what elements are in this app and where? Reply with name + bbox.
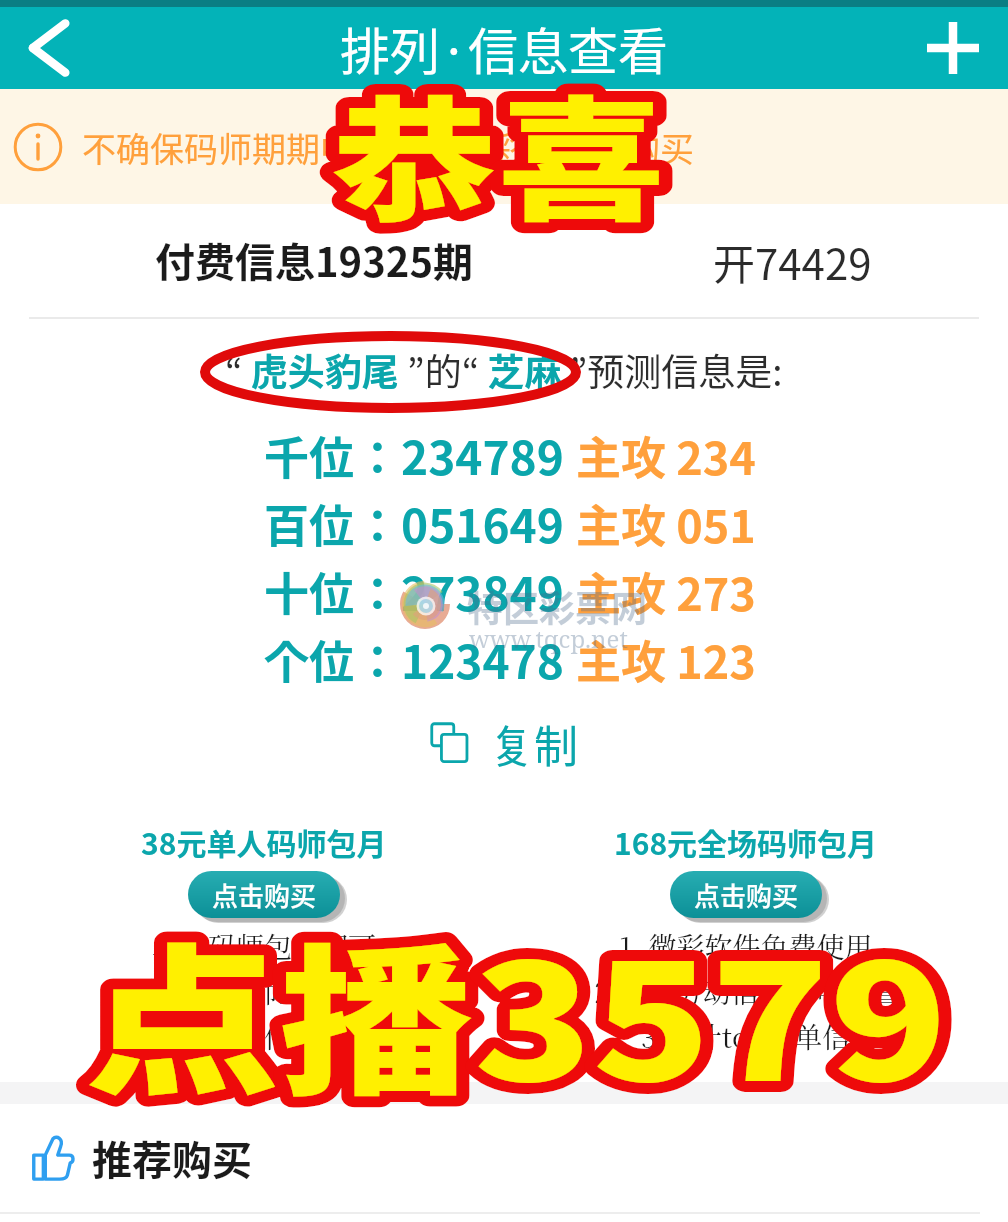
staticText: 38元单人码师包月: [141, 820, 387, 863]
button[interactable]: 推荐购买: [0, 1104, 1008, 1212]
staticText: 推荐购买: [92, 1129, 252, 1187]
staticText: 排列·信息查看: [340, 12, 669, 84]
staticText: 复制: [490, 712, 578, 776]
staticText: 关注信息: [208, 1016, 321, 1056]
staticText: ：: [355, 559, 401, 624]
staticText: 主攻 273: [576, 559, 756, 624]
staticText: 恭喜: [331, 55, 665, 248]
staticText: 单个码师包月即可: [152, 926, 377, 966]
staticText: 个位: [264, 627, 355, 692]
staticText: 1. 微彩软件免费使用: [619, 926, 873, 966]
staticText: “ 虎头豹尾 ”的“ 芝麻 ”预测信息是:: [225, 343, 783, 397]
staticText: 特区彩票网: [467, 580, 648, 632]
staticText: 不确保码师期期中奖，敬请彩民理性购买: [82, 123, 694, 172]
staticText: 3.统计top榜单信: [641, 1016, 851, 1056]
staticText: 主攻 234: [576, 423, 756, 488]
staticText: ：: [355, 491, 401, 556]
staticText: 234789: [401, 422, 564, 489]
button[interactable]: 点击购买: [670, 871, 822, 918]
staticText: 点击购买: [212, 876, 317, 914]
staticText: 开74429: [713, 231, 872, 292]
staticText: 主攻 051: [576, 491, 756, 556]
staticText: 查看该码师全部建议: [138, 971, 391, 1011]
staticText: 百位: [264, 491, 355, 556]
staticText: 123478: [401, 626, 564, 693]
staticText: ：: [355, 627, 401, 692]
staticText: 273849: [401, 558, 564, 625]
staticText: 点击购买: [694, 876, 799, 914]
staticText: 十位: [264, 559, 355, 624]
staticText: 恭喜: [331, 55, 665, 248]
staticText: 点播3579: [85, 894, 949, 1127]
button[interactable]: 复制: [414, 706, 594, 782]
staticText: 点播3579: [85, 894, 949, 1127]
staticText: 千位: [264, 423, 355, 488]
button[interactable]: Add: [898, 7, 1008, 89]
staticText: www.tqcp.net: [469, 622, 628, 655]
staticText: ：: [355, 423, 401, 488]
staticText: 051649: [401, 490, 564, 557]
button[interactable]: 点击购买: [188, 871, 340, 918]
staticText: 168元全场码师包月: [614, 820, 878, 863]
staticText: 主攻 123: [576, 627, 756, 692]
staticText: 付费信息19325期: [155, 231, 473, 289]
button[interactable]: Back: [0, 7, 100, 89]
staticText: 2.全程劳动信息即可查看: [594, 971, 899, 1011]
